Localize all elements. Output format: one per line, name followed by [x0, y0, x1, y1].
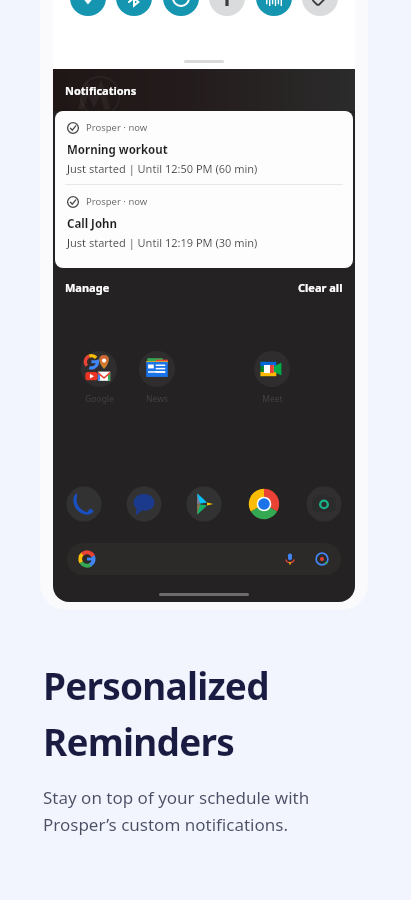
staticText: Just started | Until 12:50 PM (60 min) — [67, 161, 258, 176]
button[interactable]: Meet — [244, 351, 300, 405]
button[interactable]: Messages — [123, 483, 165, 525]
button[interactable]: Prosper · now — [55, 185, 353, 258]
staticText: Prosper · now — [86, 195, 148, 208]
button[interactable]: Auto rotate — [302, 0, 338, 16]
staticText: Reminders — [43, 716, 234, 766]
staticText: News — [146, 393, 168, 405]
staticText: Just started | Until 12:19 PM (30 min) — [67, 235, 258, 250]
button[interactable]: Google — [71, 351, 127, 405]
button[interactable]: Camera — [303, 483, 345, 525]
staticText: Meet — [262, 393, 283, 405]
staticText: Notifications — [65, 83, 137, 98]
staticText: Prosper · now — [86, 121, 148, 134]
button[interactable]: Chrome — [243, 483, 285, 525]
staticText: Google — [85, 393, 114, 405]
staticText: Call John — [67, 216, 118, 232]
button[interactable] — [67, 543, 341, 575]
staticText: Prosper’s custom notifications. — [43, 813, 288, 836]
button[interactable]: Bluetooth — [116, 0, 152, 16]
button[interactable]: Phone — [63, 483, 105, 525]
staticText: Morning workout — [67, 142, 168, 158]
button[interactable]: News — [129, 351, 185, 405]
button[interactable]: Play Store — [183, 483, 225, 525]
button[interactable]: Manage — [65, 280, 110, 295]
button[interactable]: Wi-Fi — [70, 0, 106, 16]
button[interactable]: Clear all — [298, 280, 343, 295]
button[interactable]: Prosper · now — [55, 111, 353, 184]
button[interactable]: Flashlight — [209, 0, 245, 16]
staticText: Personalized — [43, 660, 269, 710]
staticText: Stay on top of your schedule with — [43, 786, 310, 809]
button[interactable]: Data saver — [256, 0, 292, 16]
button[interactable]: Do not disturb — [163, 0, 199, 16]
